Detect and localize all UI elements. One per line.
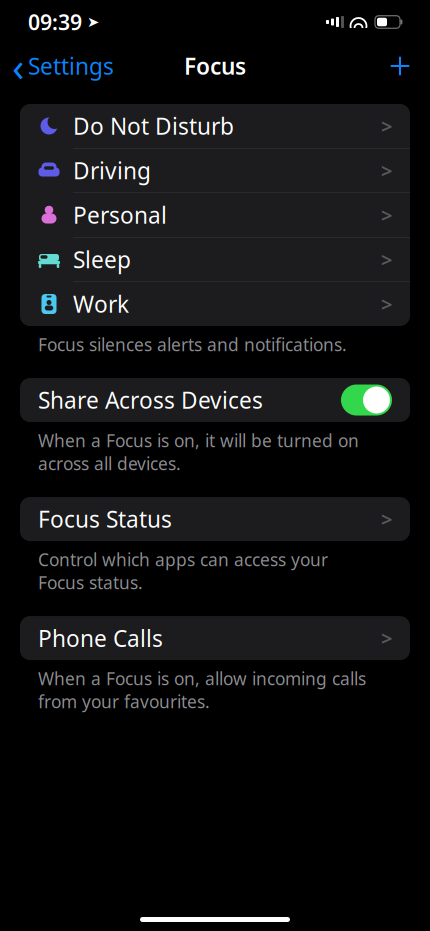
button[interactable]: Share Across Devices <box>341 384 392 415</box>
staticText: > <box>381 157 392 184</box>
button[interactable]: Add Focus <box>388 48 430 84</box>
staticText: Driving <box>73 155 151 185</box>
staticText: > <box>381 202 392 228</box>
button[interactable]: Driving <box>20 148 410 192</box>
staticText: Settings <box>28 51 114 81</box>
staticText: Focus silences alerts and notifications. <box>38 333 347 356</box>
button[interactable]: Sleep <box>20 237 410 281</box>
staticText: Focus <box>184 51 246 81</box>
staticText: Work <box>73 289 129 319</box>
button[interactable]: Phone Calls <box>20 616 410 660</box>
staticText: Do Not Disturb <box>73 111 234 141</box>
staticText: ‹ <box>12 39 24 92</box>
button[interactable]: Focus Status <box>20 497 410 541</box>
staticText: 09:39 <box>28 8 82 36</box>
staticText: Personal <box>73 200 167 230</box>
staticText: > <box>381 625 392 651</box>
button[interactable]: Personal <box>20 193 410 237</box>
staticText: Phone Calls <box>38 623 163 653</box>
staticText: When a Focus is on, allow incoming calls… <box>38 667 366 713</box>
staticText: > <box>381 113 392 139</box>
staticText: Control which apps can access your Focus… <box>38 548 328 594</box>
button[interactable]: Do Not Disturb <box>20 104 410 148</box>
staticText: Share Across Devices <box>38 385 263 415</box>
staticText: When a Focus is on, it will be turned on… <box>38 429 359 475</box>
staticText: > <box>381 246 392 273</box>
staticText: ➤ <box>87 14 99 30</box>
staticText: Focus Status <box>38 504 172 534</box>
button[interactable]: Work <box>20 282 410 326</box>
button[interactable]: ‹ <box>0 33 114 98</box>
staticText: > <box>381 506 392 532</box>
staticText: Sleep <box>73 244 131 274</box>
staticText: > <box>381 291 392 317</box>
